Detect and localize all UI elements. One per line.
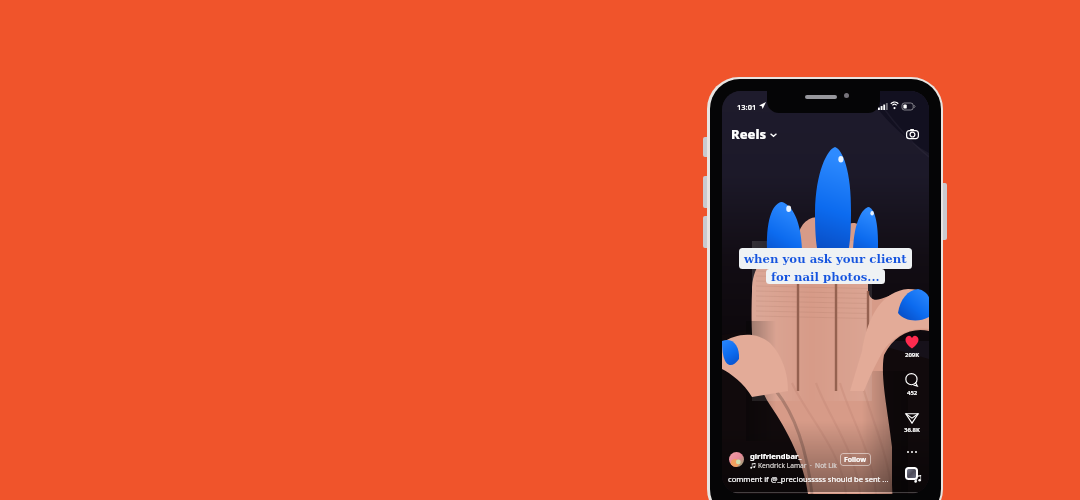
button[interactable]: Comment bbox=[899, 373, 925, 397]
staticText: 209K bbox=[905, 351, 920, 359]
button[interactable]: Audio track bbox=[905, 467, 922, 483]
button[interactable]: comment if @_preciousssss should be sent… bbox=[728, 474, 889, 484]
staticText: 452 bbox=[907, 389, 918, 397]
button[interactable]: More options bbox=[903, 446, 921, 458]
staticText: for nail photos... bbox=[771, 270, 880, 284]
button[interactable]: girlfriendbar_ bbox=[750, 451, 802, 461]
button[interactable]: Share bbox=[899, 410, 925, 434]
button[interactable]: Camera bbox=[902, 124, 922, 144]
button[interactable]: Profile photo bbox=[729, 452, 744, 467]
button[interactable]: Follow bbox=[840, 453, 871, 466]
staticText: Follow bbox=[844, 455, 867, 465]
staticText: Kendrick Lamar · Not Lik bbox=[758, 461, 837, 470]
staticText: 36.8K bbox=[904, 426, 920, 434]
staticText: when you ask your client bbox=[744, 252, 907, 266]
button[interactable]: Reels bbox=[729, 123, 779, 145]
staticText: 13:01 bbox=[737, 102, 757, 112]
staticText: Reels bbox=[731, 125, 767, 143]
staticText: girlfriendbar_ bbox=[750, 451, 802, 461]
button[interactable]: Kendrick Lamar · Not Lik bbox=[750, 461, 837, 470]
button[interactable]: Like bbox=[899, 335, 925, 359]
